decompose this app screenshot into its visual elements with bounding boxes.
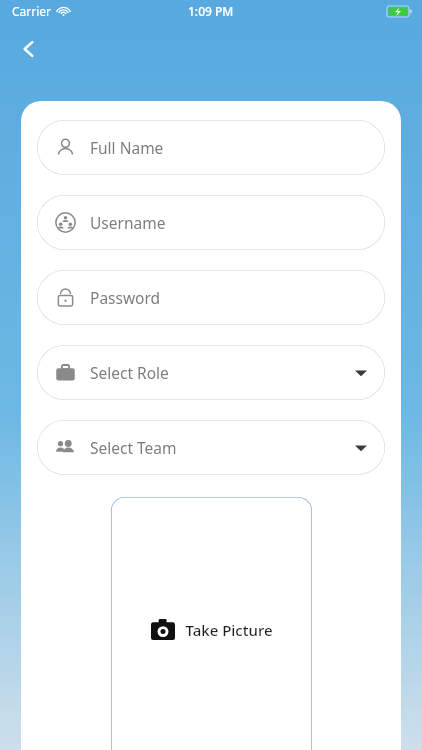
- button[interactable]: Password: [37, 270, 385, 325]
- staticText: Take Picture: [185, 620, 273, 640]
- button[interactable]: Select Role: [37, 345, 385, 400]
- staticText: Select Team: [90, 437, 177, 458]
- button[interactable]: Username: [37, 195, 385, 250]
- staticText: Username: [90, 212, 166, 233]
- staticText: Password: [90, 287, 161, 308]
- staticText: Select Role: [90, 362, 169, 383]
- staticText: Full Name: [90, 137, 164, 158]
- button[interactable]: Back: [10, 30, 48, 68]
- button[interactable]: Take Picture: [111, 497, 312, 750]
- button[interactable]: Full Name: [37, 120, 385, 175]
- button[interactable]: Select Team: [37, 420, 385, 475]
- staticText: Carrier: [12, 3, 52, 19]
- staticText: 1:09 PM: [188, 3, 234, 19]
